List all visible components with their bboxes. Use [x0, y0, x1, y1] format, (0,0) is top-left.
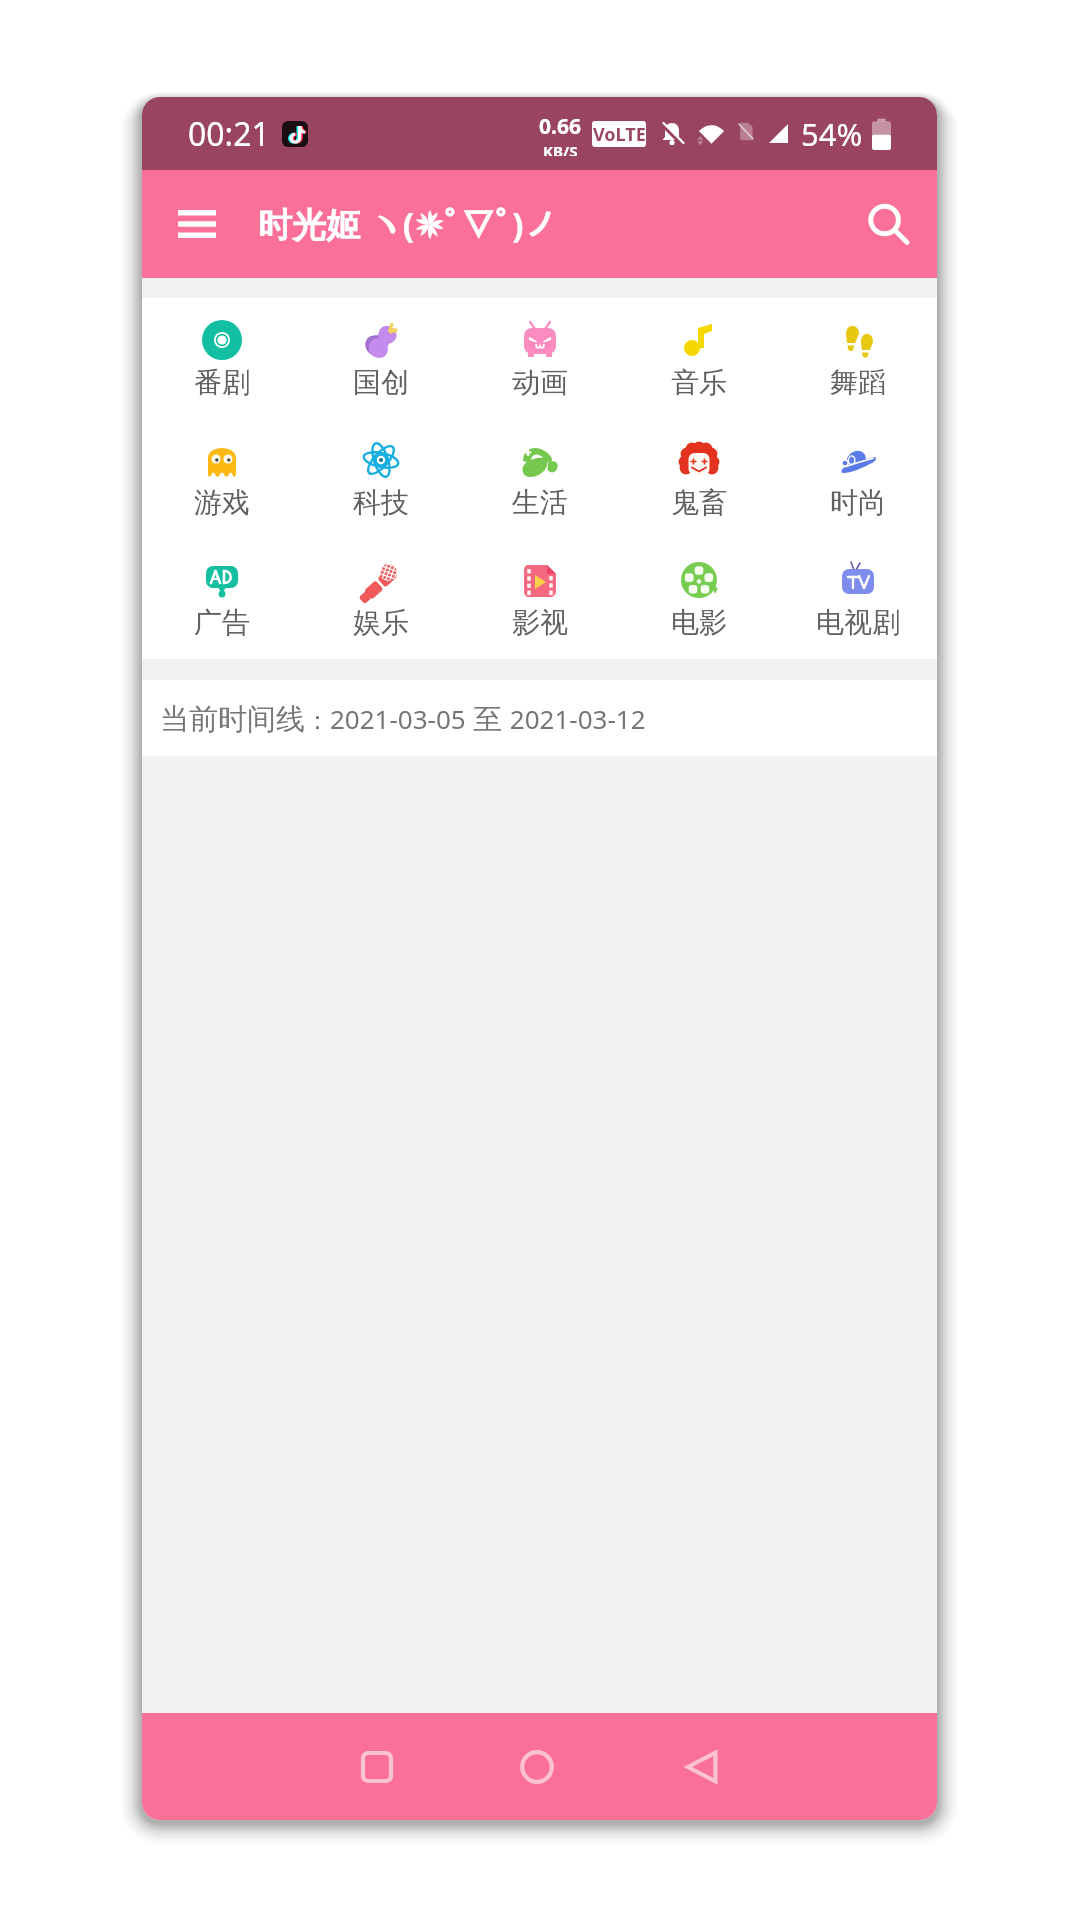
staticText: 音乐: [671, 365, 727, 400]
button[interactable]: 广告: [142, 538, 301, 658]
staticText: 动画: [512, 365, 568, 400]
button[interactable]: 电视剧: [778, 538, 937, 658]
staticText: 当前时间线：2021-03-05 至 2021-03-12: [160, 698, 646, 738]
button[interactable]: 舞蹈: [778, 298, 937, 418]
button[interactable]: 生活: [460, 418, 619, 538]
button[interactable]: Back: [667, 1732, 737, 1802]
staticText: 游戏: [194, 485, 250, 520]
staticText: 时光姬 ヽ(: [258, 201, 415, 247]
button[interactable]: Menu: [169, 196, 225, 252]
staticText: 舞蹈: [830, 365, 886, 400]
staticText: ﾟ▽ﾟ)ノ: [444, 201, 558, 247]
button[interactable]: 音乐: [619, 298, 778, 418]
staticText: 国创: [353, 365, 409, 400]
staticText: 00:21: [188, 112, 270, 156]
button[interactable]: 娱乐: [301, 538, 460, 658]
staticText: 电视剧: [816, 605, 900, 640]
staticText: 影视: [512, 605, 568, 640]
button[interactable]: 番剧: [142, 298, 301, 418]
staticText: 电影: [671, 605, 727, 640]
button[interactable]: Home: [502, 1732, 572, 1802]
button[interactable]: 电影: [619, 538, 778, 658]
staticText: 生活: [512, 485, 568, 520]
button[interactable]: 科技: [301, 418, 460, 538]
button[interactable]: 影视: [460, 538, 619, 658]
staticText: 科技: [353, 485, 409, 520]
staticText: 0.66: [539, 112, 581, 141]
staticText: 54%: [801, 113, 863, 155]
staticText: 时尚: [830, 485, 886, 520]
button[interactable]: Search: [857, 194, 917, 254]
staticText: 番剧: [194, 365, 250, 400]
button[interactable]: 当前时间线：2021-03-05 至 2021-03-12: [142, 680, 937, 756]
button[interactable]: Recents: [342, 1732, 412, 1802]
staticText: VoLTE: [593, 122, 646, 147]
button[interactable]: 国创: [301, 298, 460, 418]
button[interactable]: 时尚: [778, 418, 937, 538]
button[interactable]: 游戏: [142, 418, 301, 538]
button[interactable]: 鬼畜: [619, 418, 778, 538]
staticText: 鬼畜: [671, 485, 727, 520]
staticText: 广告: [194, 605, 250, 640]
button[interactable]: 动画: [460, 298, 619, 418]
staticText: KB/S: [543, 141, 578, 156]
staticText: 娱乐: [353, 605, 409, 640]
